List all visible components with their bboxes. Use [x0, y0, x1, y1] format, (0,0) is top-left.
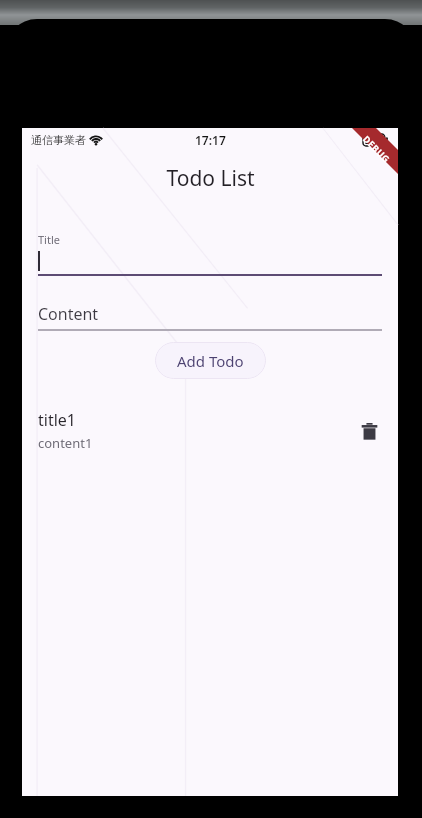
staticText: 通信事業者	[31, 133, 86, 147]
button[interactable]: Delete todo	[352, 414, 386, 448]
staticText: Content	[38, 303, 99, 325]
staticText: Add Todo	[177, 351, 244, 371]
staticText: Todo List	[166, 164, 255, 193]
staticText: Title	[38, 232, 60, 247]
button[interactable]: Add Todo	[155, 342, 266, 379]
button[interactable]: Content	[22, 298, 398, 331]
button[interactable]: Title	[22, 232, 398, 276]
staticText: DEBUG	[361, 133, 393, 165]
staticText: content1	[38, 434, 93, 452]
staticText: title1	[38, 409, 76, 431]
staticText: 17:17	[195, 132, 226, 148]
button[interactable]: title1	[22, 405, 398, 456]
